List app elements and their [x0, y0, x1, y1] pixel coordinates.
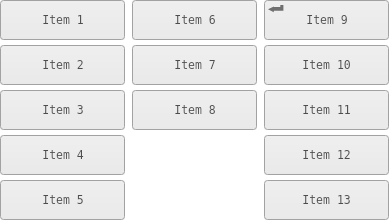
- button[interactable]: Item 13: [264, 180, 389, 220]
- button[interactable]: Item 7: [132, 45, 257, 85]
- button[interactable]: Item 3: [0, 90, 125, 130]
- staticText: Item 2: [42, 58, 84, 71]
- button[interactable]: Item 8: [132, 90, 257, 130]
- button[interactable]: Item 4: [0, 135, 125, 175]
- button[interactable]: Item 12: [264, 135, 389, 175]
- button[interactable]: Item 6: [132, 0, 257, 40]
- other: Enter: [268, 5, 285, 15]
- button[interactable]: Item 10: [264, 45, 389, 85]
- button[interactable]: Item 1: [0, 0, 125, 40]
- staticText: Item 13: [302, 193, 351, 206]
- staticText: Item 11: [302, 103, 351, 116]
- staticText: Item 10: [302, 58, 351, 71]
- staticText: Item 4: [42, 148, 84, 161]
- staticText: Item 1: [42, 13, 84, 26]
- button[interactable]: Item 5: [0, 180, 125, 220]
- staticText: Item 7: [174, 58, 216, 71]
- staticText: Item 5: [42, 193, 84, 206]
- button[interactable]: Item 2: [0, 45, 125, 85]
- staticText: Item 9: [306, 13, 348, 26]
- staticText: Item 8: [174, 103, 216, 116]
- button[interactable]: Item 11: [264, 90, 389, 130]
- button[interactable]: Item 9: [264, 0, 389, 40]
- staticText: Item 6: [174, 13, 216, 26]
- staticText: Item 3: [42, 103, 84, 116]
- staticText: Item 12: [302, 148, 351, 161]
